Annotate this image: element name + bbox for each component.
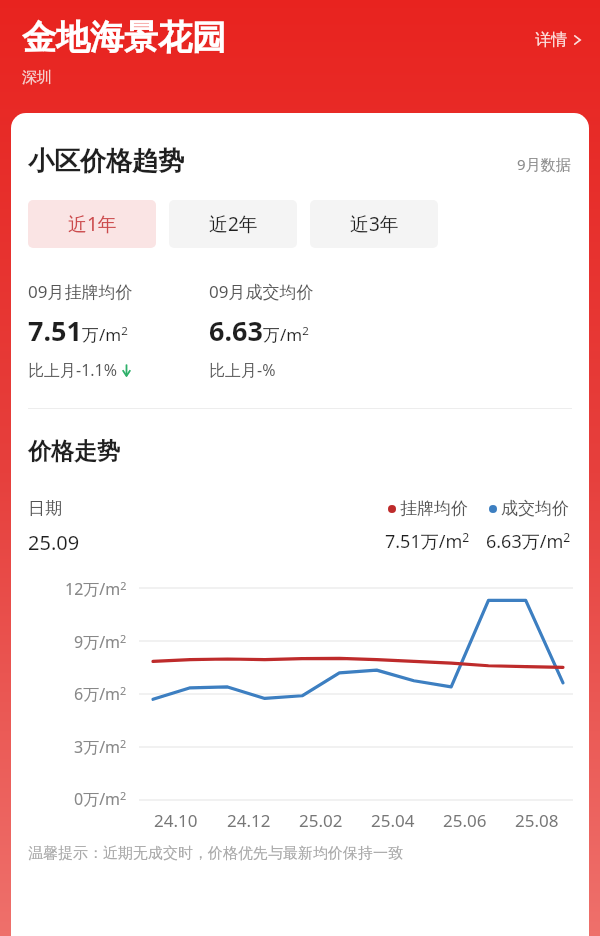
staticText: 12万/m2 [65, 578, 127, 600]
staticText: 小区价格趋势 [28, 145, 184, 178]
other: 详情 [572, 35, 582, 45]
button[interactable]: 近1年 [28, 200, 156, 248]
staticText: 25.02 [299, 809, 343, 832]
staticText: 6.63万/m2 [486, 529, 571, 554]
staticText: 25.04 [371, 809, 415, 832]
staticText: 3万/m2 [74, 736, 127, 758]
staticText: 成交均价 [501, 498, 569, 519]
staticText: 日期 [28, 498, 62, 519]
staticText: 7.51万/m2 [385, 529, 470, 554]
staticText: 7.51万/m2 [28, 312, 128, 349]
staticText: 近1年 [68, 211, 117, 237]
staticText: 6.63万/m2 [209, 312, 309, 349]
button[interactable]: 近3年 [310, 200, 438, 248]
button[interactable]: 详情 [529, 24, 588, 56]
staticText: 挂牌均价 [400, 498, 468, 519]
staticText: 25.06 [443, 809, 487, 832]
staticText: 0万/m2 [74, 788, 127, 810]
staticText: 9万/m2 [74, 631, 127, 653]
staticText: 金地海景花园 [22, 16, 226, 59]
staticText: 6万/m2 [74, 683, 127, 705]
staticText: 比上月-1.1% [28, 359, 118, 381]
staticText: 25.08 [515, 809, 559, 832]
staticText: 09月成交均价 [209, 280, 314, 303]
staticText: 详情 [535, 30, 567, 50]
button[interactable]: 近2年 [169, 200, 297, 248]
staticText: 近3年 [350, 211, 399, 237]
staticText: 深圳 [22, 68, 52, 87]
staticText: 24.12 [227, 809, 271, 832]
staticText: 比上月-% [209, 359, 276, 381]
staticText: 9月数据 [517, 154, 571, 174]
staticText: 09月挂牌均价 [28, 280, 133, 303]
staticText: 价格走势 [28, 437, 120, 466]
staticText: 25.09 [28, 529, 80, 556]
staticText: 24.10 [154, 809, 198, 832]
staticText: 温馨提示：近期无成交时，价格优先与最新均价保持一致 [28, 844, 403, 863]
staticText: 近2年 [209, 211, 258, 237]
